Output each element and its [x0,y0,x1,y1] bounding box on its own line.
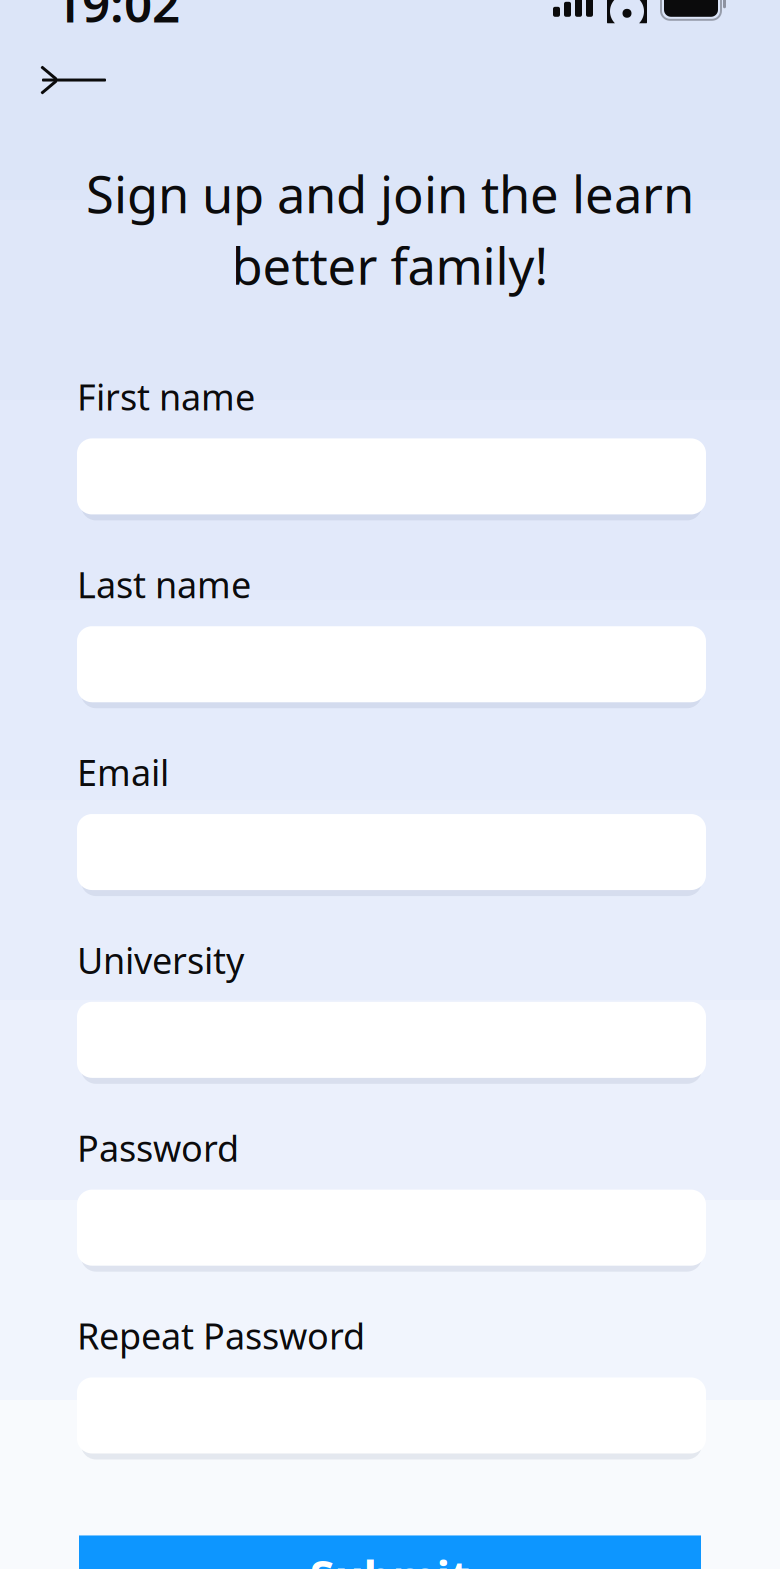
staticText: University [77,936,244,984]
staticText: Repeat Password [77,1312,365,1359]
button[interactable]: Back [36,58,112,102]
staticText: Submit [309,1546,470,1569]
button[interactable]: Submit [79,1535,701,1569]
staticText: Password [77,1124,239,1172]
staticText: better family! [231,231,548,299]
staticText: Email [77,748,169,796]
staticText: Sign up and join the learn [86,160,694,227]
staticText: 19:02 [54,0,180,36]
staticText: First name [77,373,255,420]
staticText: Last name [77,560,251,608]
